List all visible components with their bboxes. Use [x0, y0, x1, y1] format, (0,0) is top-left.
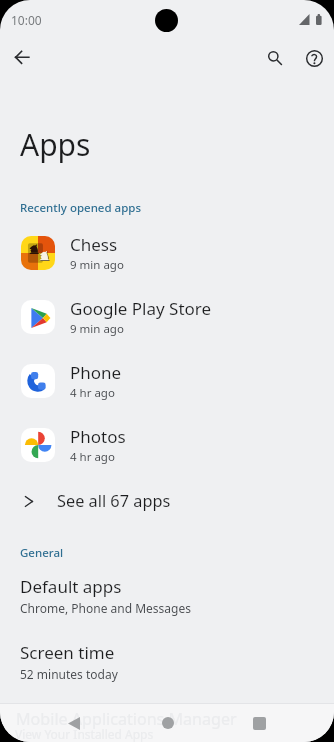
staticText: Chess [70, 233, 118, 256]
button[interactable]: Photos [0, 417, 334, 473]
button[interactable]: Search [255, 38, 295, 78]
button[interactable]: Back [2, 38, 42, 78]
staticText: 10:00 [11, 12, 42, 28]
button[interactable]: Help [294, 38, 334, 78]
staticText: Mobile Applications Manager [16, 708, 237, 730]
staticText: See all 67 apps [57, 490, 171, 512]
staticText: Google Play Store [70, 297, 212, 320]
staticText: Apps [20, 124, 91, 165]
staticText: 4 hr ago [70, 385, 115, 401]
staticText: Default apps [20, 575, 122, 598]
staticText: Screen time [20, 641, 115, 664]
staticText: Phone [70, 361, 122, 384]
staticText: Recently opened apps [20, 200, 142, 216]
staticText: Photos [70, 425, 126, 448]
button[interactable]: Home [150, 704, 186, 742]
staticText: 4 hr ago [70, 449, 115, 465]
staticText: View Your Installed Apps [15, 726, 154, 742]
staticText: 52 minutes today [20, 666, 118, 682]
button[interactable]: Back [56, 704, 92, 742]
button[interactable]: See all 67 apps [0, 481, 334, 521]
button[interactable]: Phone [0, 353, 334, 409]
button[interactable]: Recents [241, 704, 277, 742]
button[interactable]: Default apps [0, 571, 334, 622]
button[interactable]: Screen time [0, 637, 334, 688]
staticText: General [20, 545, 64, 561]
button[interactable]: Google Play Store [0, 289, 334, 345]
button[interactable]: Chess [0, 225, 334, 281]
staticText: 9 min ago [70, 257, 124, 273]
staticText: Chrome, Phone and Messages [20, 600, 191, 616]
staticText: 9 min ago [70, 321, 124, 337]
